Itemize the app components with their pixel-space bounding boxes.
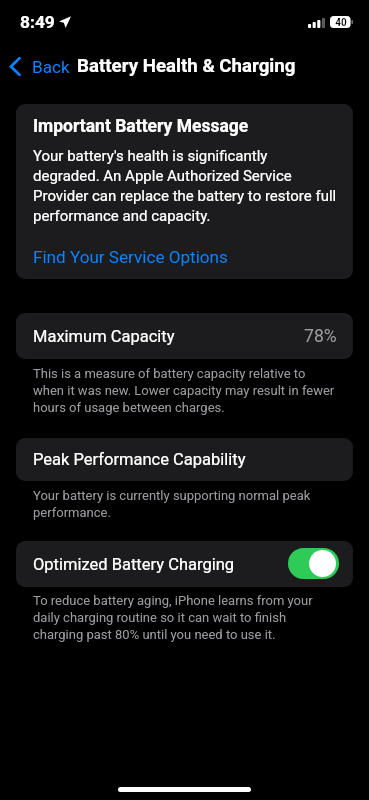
staticText: Find Your Service Options [33, 248, 228, 267]
staticText: Optimized Battery Charging [33, 555, 235, 574]
staticText: This is a measure of battery capacity re… [33, 364, 339, 415]
staticText: 8:49 [20, 12, 55, 32]
staticText: Back [32, 57, 70, 77]
staticText: 40 [333, 16, 349, 28]
button[interactable]: Optimized Battery Charging toggle [288, 548, 339, 579]
staticText: Your battery's health is significantly d… [33, 145, 337, 225]
staticText: Peak Performance Capability [33, 450, 246, 469]
staticText: 78% [304, 326, 337, 347]
staticText: Important Battery Message [33, 116, 249, 136]
button[interactable]: Back [0, 52, 74, 81]
staticText: Your battery is currently supporting nor… [33, 486, 339, 520]
staticText: Battery Health & Charging [77, 55, 296, 77]
button[interactable]: Peak Performance Capability [16, 438, 353, 481]
staticText: To reduce battery aging, iPhone learns f… [33, 591, 339, 642]
button[interactable]: Find Your Service Options [33, 248, 337, 267]
button[interactable]: Maximum Capacity [16, 313, 353, 359]
staticText: Maximum Capacity [33, 327, 175, 346]
